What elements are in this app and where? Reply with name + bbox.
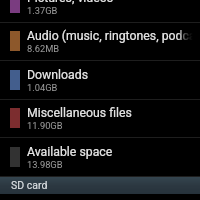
staticText: 8.62MB (27, 43, 60, 54)
button[interactable]: Downloads (0, 61, 200, 100)
staticText: Pictures, videos (27, 0, 114, 5)
staticText: 11.90GB (27, 120, 63, 131)
staticText: 13.98GB (27, 159, 63, 170)
staticText: Downloads (27, 68, 89, 82)
staticText: Audio (music, ringtones, podcasts) (27, 29, 200, 43)
staticText: Miscellaneous files (27, 106, 132, 120)
button[interactable]: Available space (0, 138, 200, 177)
staticText: SD card (11, 179, 48, 191)
button[interactable]: Miscellaneous files (0, 99, 200, 138)
staticText: 1.04GB (27, 82, 58, 93)
button[interactable]: Audio (music, ringtones, podcasts) (0, 22, 200, 61)
staticText: Available space (27, 145, 113, 159)
staticText: 1.37GB (27, 5, 58, 16)
button[interactable]: Pictures, videos (0, 0, 200, 23)
